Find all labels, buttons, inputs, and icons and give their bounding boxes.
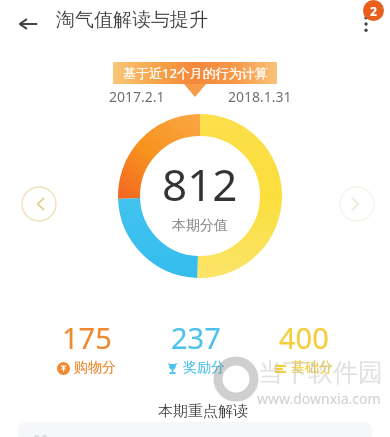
staticText: 2017.2.1 bbox=[109, 87, 165, 106]
staticText: 奖励分 bbox=[183, 359, 225, 377]
staticText: 基于近12个月的行为计算 bbox=[123, 64, 268, 82]
staticText: 2018.1.31 bbox=[228, 87, 292, 106]
staticText: 当下软件园 bbox=[258, 357, 383, 388]
button[interactable]: Notifications, 2 new bbox=[363, 0, 384, 21]
staticText: 812 bbox=[162, 154, 238, 214]
staticText: 400 bbox=[279, 318, 329, 357]
button[interactable]: 400 bbox=[268, 318, 339, 377]
staticText: 淘气值解读与提升 bbox=[56, 8, 208, 32]
button[interactable]: Previous period bbox=[20, 185, 58, 223]
staticText: 237 bbox=[171, 318, 221, 357]
button[interactable]: 基于近12个月的行为计算 bbox=[113, 62, 277, 84]
staticText: www.downxia.com bbox=[257, 389, 381, 408]
button[interactable]: Back bbox=[8, 4, 48, 44]
staticText: “ bbox=[32, 423, 48, 437]
staticText: 基础分 bbox=[291, 359, 333, 377]
staticText: 购物分 bbox=[74, 359, 116, 377]
button[interactable]: Next period bbox=[338, 185, 376, 223]
button[interactable]: 175 bbox=[51, 318, 122, 377]
staticText: 本期分值 bbox=[172, 217, 228, 235]
staticText: 本期重点解读 bbox=[158, 402, 248, 421]
button[interactable]: 237 bbox=[160, 318, 231, 377]
button[interactable]: More options bbox=[346, 2, 386, 42]
staticText: 175 bbox=[62, 318, 112, 357]
staticText: 2 bbox=[370, 3, 377, 19]
